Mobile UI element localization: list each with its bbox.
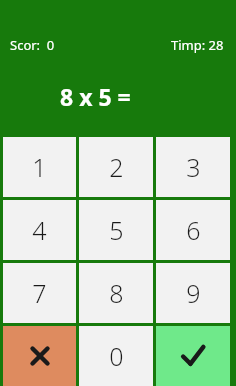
staticText: 5: [109, 213, 124, 247]
staticText: 3: [186, 150, 201, 184]
staticText: 9: [186, 276, 201, 310]
staticText: Timp: 28: [171, 36, 224, 54]
button[interactable]: 4: [3, 200, 76, 260]
staticText: 8 x 5 =: [60, 81, 131, 112]
button[interactable]: 2: [79, 137, 153, 197]
staticText: 1: [32, 150, 47, 184]
staticText: 0: [109, 339, 124, 373]
button[interactable]: 1: [3, 137, 76, 197]
button[interactable]: 9: [156, 263, 230, 323]
staticText: 4: [32, 213, 47, 247]
staticText: 6: [186, 213, 201, 247]
staticText: 8: [109, 276, 124, 310]
staticText: Scor: 0: [10, 36, 55, 54]
button[interactable]: 6: [156, 200, 230, 260]
button[interactable]: 3: [156, 137, 230, 197]
staticText: 7: [32, 276, 47, 310]
button[interactable]: 7: [3, 263, 76, 323]
button[interactable]: Clear: [3, 326, 76, 386]
button[interactable]: 5: [79, 200, 153, 260]
button[interactable]: Confirm: [156, 326, 230, 386]
button[interactable]: 0: [79, 326, 153, 386]
staticText: 2: [109, 150, 124, 184]
button[interactable]: 8: [79, 263, 153, 323]
